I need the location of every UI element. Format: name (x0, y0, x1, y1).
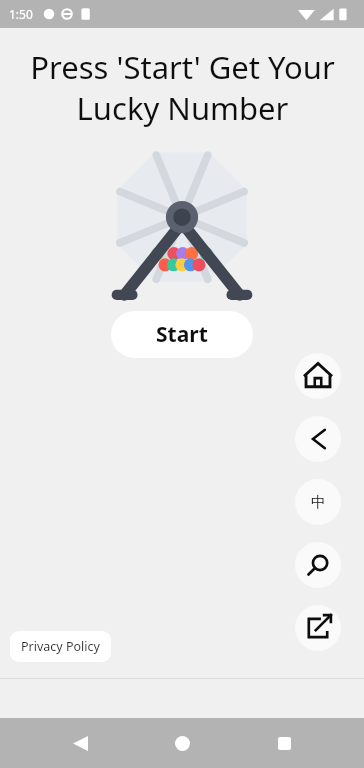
button[interactable]: Privacy Policy (10, 631, 111, 662)
staticText: Press 'Start' Get Your Lucky Number (30, 46, 335, 129)
button[interactable]: Open in new window (295, 605, 341, 651)
button[interactable]: Switch language (295, 479, 341, 525)
staticText: 1:50 (9, 6, 33, 22)
button[interactable]: Home (160, 721, 204, 765)
button[interactable]: Back (58, 721, 102, 765)
staticText: Start (156, 320, 208, 349)
button[interactable]: Recent apps (262, 721, 306, 765)
staticText: Privacy Policy (21, 638, 100, 655)
staticText: 中 (311, 493, 326, 512)
button[interactable]: Search (295, 542, 341, 588)
button[interactable]: Home (295, 353, 341, 399)
button[interactable]: Start (111, 311, 253, 358)
button[interactable]: Back (295, 416, 341, 462)
